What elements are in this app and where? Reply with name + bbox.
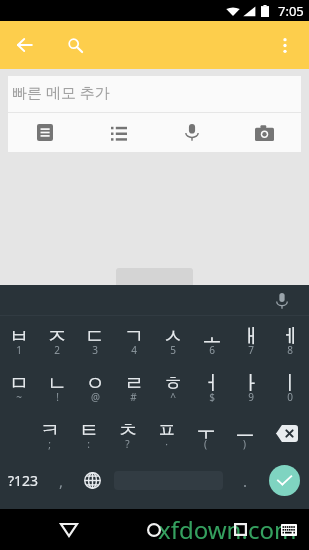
button[interactable]: ㅈ — [38, 316, 76, 363]
button[interactable]: ㅂ — [0, 316, 38, 363]
button[interactable]: ㅏ — [231, 363, 270, 410]
button[interactable]: Back — [6, 27, 42, 63]
staticText: ㅁ — [9, 371, 29, 396]
staticText: ( — [204, 437, 207, 451]
button[interactable]: ㄴ — [38, 363, 76, 410]
button[interactable]: ㄹ — [114, 363, 153, 410]
button[interactable]: Voice input — [268, 287, 296, 315]
staticText: 3 — [92, 343, 98, 357]
staticText: ? — [125, 437, 130, 451]
staticText: 8 — [287, 343, 293, 357]
button[interactable]: ㅐ — [231, 316, 270, 363]
staticText: ^ — [170, 390, 176, 404]
button[interactable]: ㅌ — [69, 410, 108, 457]
button[interactable]: Recent apps — [217, 509, 263, 550]
staticText: ㅌ — [79, 418, 99, 443]
staticText: ㅗ — [202, 324, 222, 349]
staticText: 6 — [209, 343, 215, 357]
button[interactable]: ㅓ — [192, 363, 231, 410]
button[interactable]: ㅎ — [153, 363, 192, 410]
button[interactable]: ?123 — [0, 457, 46, 504]
staticText: . — [243, 471, 248, 491]
button[interactable]: ㅣ — [270, 363, 309, 410]
staticText: : — [87, 437, 90, 451]
staticText: 0 — [287, 390, 293, 404]
staticText: ㅇ — [85, 371, 105, 396]
staticText: 4 — [131, 343, 137, 357]
button[interactable]: Search — [57, 27, 93, 63]
button[interactable]: . — [230, 457, 260, 504]
staticText: @ — [91, 390, 100, 404]
staticText: ㄱ — [124, 324, 144, 349]
staticText: 빠른 메모 추가 — [12, 82, 110, 102]
staticText: ㅅ — [163, 324, 183, 349]
staticText: xfdown.com — [158, 513, 297, 546]
button[interactable]: Enter — [260, 457, 309, 504]
staticText: ! — [56, 390, 59, 404]
button[interactable]: 빠른 메모 추가 — [8, 76, 301, 112]
button[interactable]: More options — [267, 27, 303, 63]
button[interactable]: Home — [131, 509, 177, 550]
button[interactable]: Back — [46, 509, 92, 550]
staticText: 2 — [54, 343, 60, 357]
staticText: 9 — [248, 390, 254, 404]
staticText: ㅏ — [241, 371, 261, 396]
staticText: 1 — [16, 343, 22, 357]
button[interactable]: ㅡ — [225, 410, 264, 457]
staticText: ㅣ — [280, 371, 300, 396]
button[interactable]: ㅜ — [186, 410, 225, 457]
button[interactable]: ㅊ — [108, 410, 147, 457]
button[interactable]: , — [46, 457, 77, 504]
staticText: ㅐ — [241, 324, 261, 349]
staticText: ㄷ — [85, 324, 105, 349]
staticText: # — [130, 390, 137, 404]
button[interactable]: ㅋ — [30, 410, 69, 457]
staticText: ㅊ — [118, 418, 138, 443]
button[interactable]: ㄱ — [114, 316, 153, 363]
staticText: $ — [209, 390, 215, 404]
button[interactable]: Photo note — [228, 113, 301, 152]
button[interactable]: Change keyboard — [77, 457, 107, 504]
button[interactable]: ㅗ — [192, 316, 231, 363]
button[interactable]: Backspace — [264, 410, 309, 457]
staticText: ?123 — [8, 471, 39, 490]
staticText: ㅋ — [40, 418, 60, 443]
staticText: 7 — [248, 343, 254, 357]
staticText: , — [59, 471, 64, 491]
staticText: ㄹ — [124, 371, 144, 396]
staticText: · — [165, 437, 168, 451]
button[interactable]: ㅔ — [270, 316, 309, 363]
staticText: ㅈ — [47, 324, 67, 349]
staticText: ㅔ — [280, 324, 300, 349]
button[interactable]: ㅇ — [76, 363, 114, 410]
button[interactable]: Text note — [8, 113, 82, 152]
button[interactable]: Space — [107, 457, 230, 504]
staticText: ㄴ — [47, 371, 67, 396]
button[interactable]: ㅍ — [147, 410, 186, 457]
staticText: ) — [243, 437, 246, 451]
staticText: 5 — [170, 343, 176, 357]
staticText: ㅜ — [196, 418, 216, 443]
staticText: ㅂ — [9, 324, 29, 349]
staticText: ~ — [16, 390, 22, 404]
button[interactable]: ㄷ — [76, 316, 114, 363]
staticText: 7:05 — [278, 2, 304, 20]
button[interactable]: Switch keyboard — [277, 518, 301, 542]
button[interactable]: Voice note — [155, 113, 228, 152]
staticText: ㅎ — [163, 371, 183, 396]
button[interactable]: ㅁ — [0, 363, 38, 410]
button[interactable]: List — [82, 113, 155, 152]
staticText: ; — [48, 437, 51, 451]
staticText: ㅡ — [235, 418, 255, 443]
staticText: ㅍ — [157, 418, 177, 443]
button[interactable]: ㅅ — [153, 316, 192, 363]
staticText: ㅓ — [202, 371, 222, 396]
